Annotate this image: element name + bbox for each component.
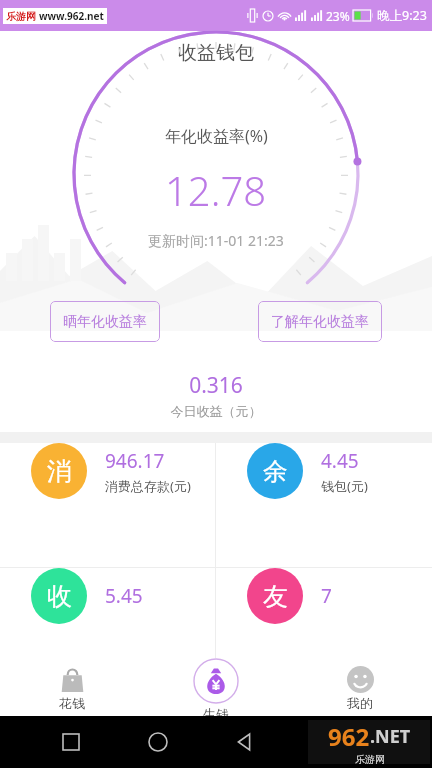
- button[interactable]: 花钱: [0, 658, 144, 716]
- staticText: 946.17: [105, 448, 165, 474]
- staticText: 今日收益（元）: [0, 403, 432, 419]
- staticText: 0.316: [0, 371, 432, 400]
- staticText: 收益钱包: [0, 41, 432, 65]
- staticText: .NET: [370, 724, 411, 749]
- staticText: 乐游网: [6, 10, 36, 23]
- staticText: 962: [328, 720, 370, 753]
- staticText: 4.45: [321, 448, 359, 474]
- button[interactable]: Back: [229, 727, 259, 757]
- button[interactable]: 生钱: [144, 658, 288, 716]
- staticText: 晒年化收益率: [63, 313, 147, 331]
- staticText: 消费总存款(元): [105, 477, 191, 495]
- staticText: 更新时间:11-01 21:23: [148, 231, 284, 250]
- button[interactable]: 友: [216, 568, 432, 624]
- staticText: 余: [263, 456, 288, 487]
- staticText: 我的: [347, 695, 373, 711]
- staticText: www.962.net: [39, 9, 104, 23]
- button[interactable]: 了解年化收益率: [258, 301, 382, 342]
- staticText: 钱包(元): [321, 477, 368, 495]
- button[interactable]: Home: [143, 727, 173, 757]
- button[interactable]: 我的: [288, 658, 432, 716]
- button[interactable]: 收: [0, 568, 215, 624]
- staticText: 7: [321, 583, 332, 609]
- staticText: 年化收益率(%): [165, 125, 268, 147]
- staticText: 生钱: [203, 706, 229, 716]
- staticText: 乐游网: [355, 753, 385, 764]
- staticText: 消: [47, 456, 72, 487]
- button[interactable]: 余: [216, 443, 432, 499]
- button[interactable]: 晒年化收益率: [50, 301, 160, 342]
- staticText: 5.45: [105, 583, 143, 609]
- staticText: 了解年化收益率: [271, 313, 369, 331]
- staticText: 收: [47, 581, 72, 612]
- staticText: 晚上9:23: [377, 7, 427, 24]
- staticText: 花钱: [59, 695, 85, 711]
- staticText: 23%: [326, 8, 350, 24]
- staticText: 12.78: [165, 163, 267, 217]
- button[interactable]: Recents: [56, 727, 86, 757]
- staticText: 友: [263, 581, 288, 612]
- button[interactable]: 消: [0, 443, 215, 499]
